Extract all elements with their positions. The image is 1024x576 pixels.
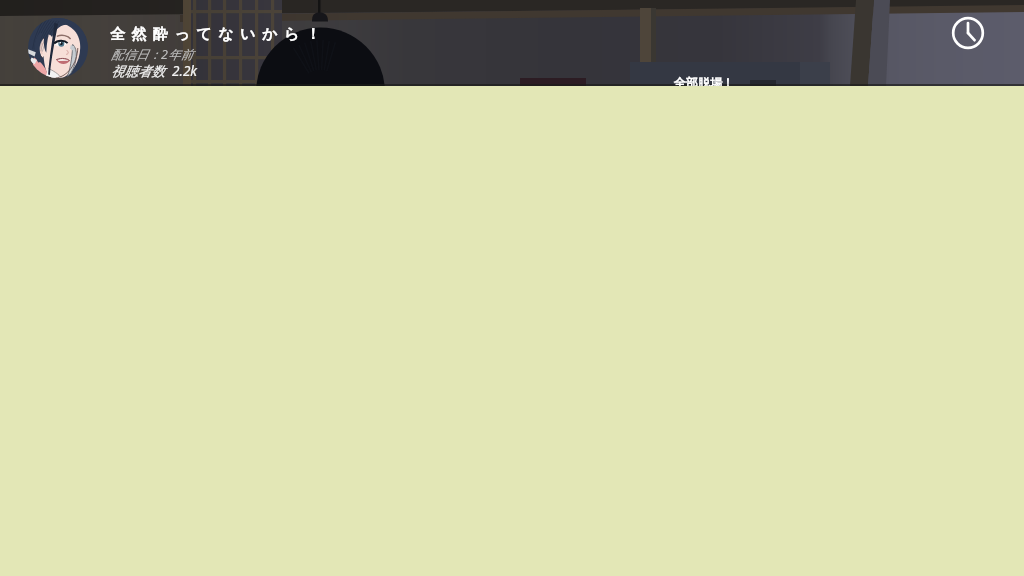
- staticText: 全部脱場！: [674, 75, 734, 86]
- staticText: 配信日：2年前: [111, 46, 193, 63]
- staticText: 視聴者数 2.2k: [111, 62, 198, 80]
- button[interactable]: History: [948, 13, 988, 53]
- staticText: 全然酔ってないから！: [110, 25, 328, 44]
